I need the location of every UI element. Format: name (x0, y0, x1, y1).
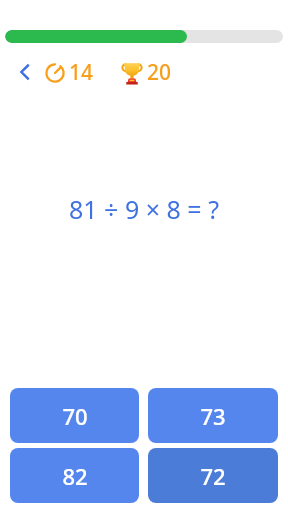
button[interactable]: 20 (120, 58, 172, 87)
staticText: 20 (147, 58, 172, 87)
staticText: 14 (69, 58, 94, 87)
button[interactable]: 73 (148, 388, 278, 443)
staticText: 81 ÷ 9 × 8 = ? (69, 192, 219, 226)
staticText: 82 (62, 461, 88, 491)
button[interactable]: Back (10, 57, 40, 87)
button[interactable]: 14 (44, 58, 94, 87)
button[interactable]: 70 (10, 388, 139, 443)
button[interactable]: 82 (10, 448, 139, 503)
staticText: 72 (200, 461, 226, 491)
staticText: 70 (62, 401, 88, 431)
staticText: 73 (200, 401, 226, 431)
button[interactable]: 72 (148, 448, 278, 503)
